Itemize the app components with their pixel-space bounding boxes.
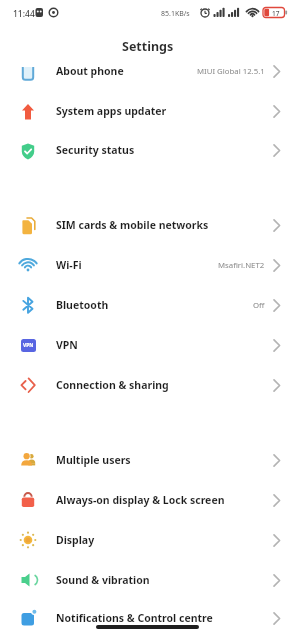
staticText: Connection & sharing xyxy=(56,378,169,392)
button[interactable]: Multiple users xyxy=(0,440,295,480)
staticText: 85.1KB/s xyxy=(161,9,190,19)
button[interactable]: Sound & vibration xyxy=(0,560,295,600)
staticText: Sound & vibration xyxy=(56,573,150,587)
button[interactable]: System apps updater xyxy=(0,91,295,131)
button[interactable]: Display xyxy=(0,520,295,560)
button[interactable]: Always-on display & Lock screen xyxy=(0,480,295,520)
staticText: 17 xyxy=(272,9,280,18)
staticText: SIM cards & mobile networks xyxy=(56,218,209,232)
button[interactable]: Connection & sharing xyxy=(0,365,295,405)
staticText: Settings xyxy=(122,38,174,55)
button[interactable]: About phone xyxy=(0,51,295,91)
button[interactable]: Notifications & Control centre xyxy=(0,598,295,638)
button[interactable]: Security status xyxy=(0,130,295,170)
staticText: MIUI Global 12.5.1 xyxy=(197,66,265,77)
staticText: Off xyxy=(253,300,265,311)
button[interactable]: VPN xyxy=(0,325,295,365)
staticText: Wi-Fi xyxy=(56,258,82,272)
button[interactable]: SIM cards & mobile networks xyxy=(0,205,295,245)
staticText: Notifications & Control centre xyxy=(56,611,213,625)
staticText: System apps updater xyxy=(56,104,167,118)
staticText: Always-on display & Lock screen xyxy=(56,493,225,507)
staticText: About phone xyxy=(56,64,124,78)
staticText: Multiple users xyxy=(56,453,131,467)
button[interactable]: Wi-Fi xyxy=(0,245,295,285)
staticText: Display xyxy=(56,533,95,547)
button[interactable]: Bluetooth xyxy=(0,285,295,325)
staticText: VPN xyxy=(23,342,34,349)
staticText: VPN xyxy=(56,338,78,352)
staticText: Msafiri.NET2 xyxy=(218,260,265,271)
staticText: 11:44 xyxy=(13,8,35,20)
staticText: Bluetooth xyxy=(56,298,109,312)
staticText: Security status xyxy=(56,143,135,157)
